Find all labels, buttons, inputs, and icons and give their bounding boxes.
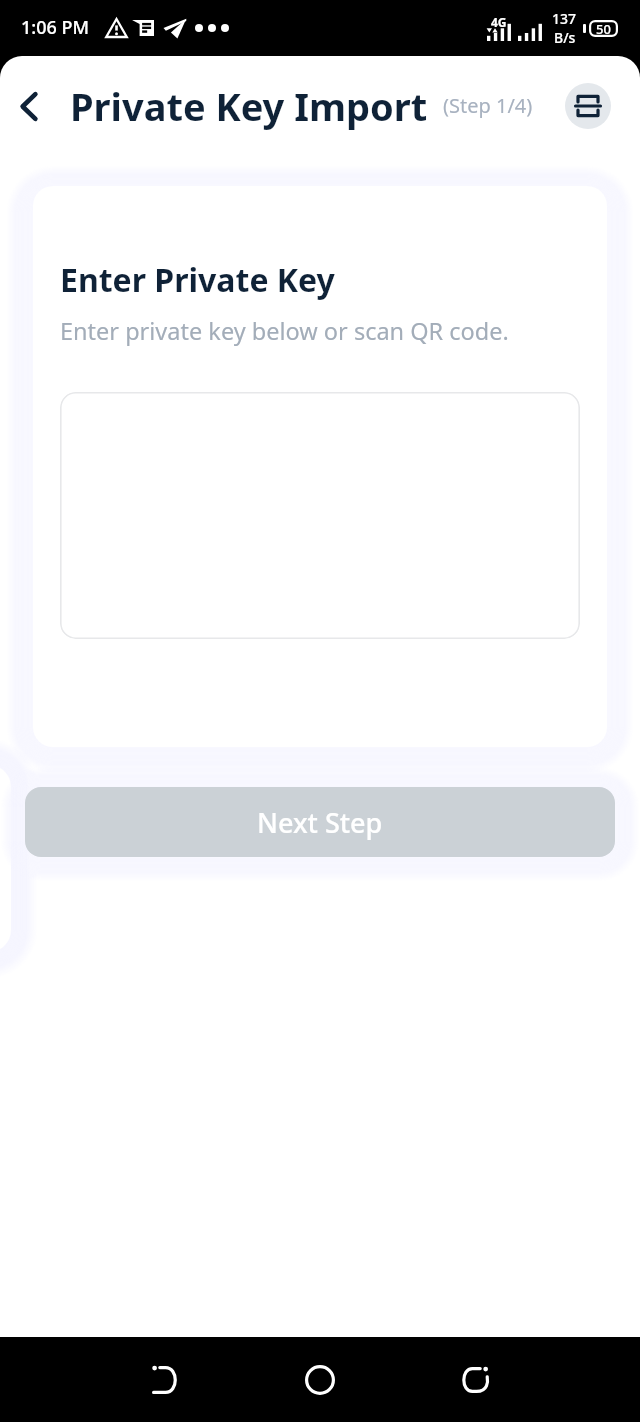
staticText: 50 (596, 20, 611, 37)
button[interactable]: Home (289, 1349, 351, 1411)
button[interactable]: Recents (444, 1349, 506, 1411)
staticText: 4G (491, 14, 507, 30)
staticText: Private Key Import (70, 80, 428, 132)
button[interactable]: Scan QR code (565, 83, 611, 129)
button[interactable]: Back (134, 1349, 196, 1411)
staticText: 1:06 PM (21, 15, 89, 40)
staticText: Next Step (257, 804, 383, 841)
staticText: Enter Private Key (60, 258, 335, 302)
staticText: 137 (552, 9, 577, 28)
staticText: (Step 1/4) (443, 92, 533, 119)
staticText: Enter private key below or scan QR code. (60, 315, 509, 347)
button[interactable]: Back (6, 83, 52, 129)
staticText: B/s (554, 28, 576, 47)
button[interactable]: Next Step (25, 787, 615, 857)
